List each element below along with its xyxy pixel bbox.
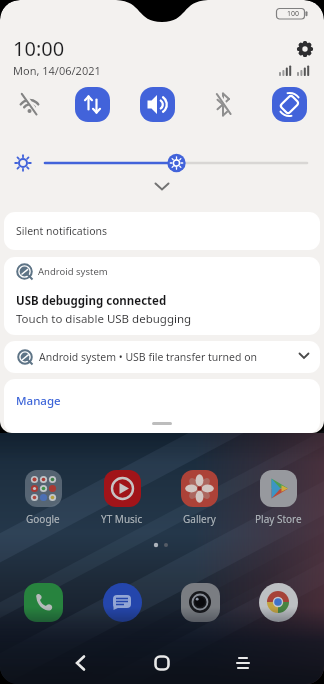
button[interactable] [140, 87, 175, 122]
button[interactable]: Manage [16, 393, 61, 409]
staticText: 10:00 [13, 35, 65, 62]
button[interactable] [181, 470, 218, 507]
staticText: Silent notifications [16, 224, 108, 238]
button[interactable] [12, 87, 47, 122]
staticText: YT Music [101, 512, 143, 526]
button[interactable] [103, 583, 142, 622]
button[interactable] [25, 470, 62, 507]
button[interactable] [63, 645, 99, 681]
staticText: Manage [16, 393, 61, 409]
staticText: Mon, 14/06/2021 [13, 63, 101, 78]
button[interactable] [24, 583, 63, 622]
button[interactable] [144, 645, 180, 681]
staticText: Android system [38, 265, 108, 278]
button[interactable]: Android system • USB file transfer turne… [4, 341, 320, 373]
button[interactable] [206, 87, 241, 122]
button[interactable] [272, 87, 307, 122]
staticText: Play Store [255, 512, 302, 526]
button[interactable] [0, 145, 324, 181]
staticText: Google [26, 512, 60, 526]
staticText: Gallery [183, 512, 216, 526]
button[interactable] [259, 583, 298, 622]
staticText: 100 [287, 9, 300, 19]
staticText: USB debugging connected [16, 293, 167, 309]
button[interactable] [181, 583, 220, 622]
button[interactable] [225, 645, 261, 681]
button[interactable] [75, 87, 110, 122]
button[interactable]: Silent notifications [4, 212, 320, 250]
button[interactable]: Android system [4, 257, 320, 335]
button[interactable] [148, 180, 176, 194]
button[interactable] [294, 38, 316, 60]
staticText: Android system • USB file transfer turne… [39, 350, 258, 364]
button[interactable] [104, 470, 141, 507]
button[interactable] [260, 470, 297, 507]
staticText: Touch to disable USB debugging [16, 311, 192, 327]
